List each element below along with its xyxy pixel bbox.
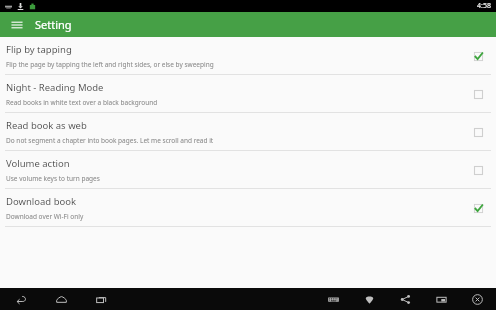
button[interactable]: Back — [12, 290, 30, 308]
staticText: Night - Reading Mode — [6, 81, 104, 94]
staticText: Use volume keys to turn pages — [6, 174, 100, 183]
button[interactable]: Keyboard — [324, 290, 342, 308]
button[interactable]: Flip by tapping — [0, 37, 496, 74]
button[interactable]: Checked — [468, 198, 488, 218]
button[interactable]: Night - Reading Mode — [0, 75, 496, 112]
button[interactable]: Unchecked — [468, 122, 488, 142]
button[interactable]: Unchecked — [468, 84, 488, 104]
button[interactable]: Recent apps — [92, 290, 110, 308]
button[interactable]: Unchecked — [468, 160, 488, 180]
button[interactable]: Location — [360, 290, 378, 308]
button[interactable]: Screenshot — [432, 290, 450, 308]
staticText: Do not segment a chapter into book pages… — [6, 136, 214, 145]
staticText: Download over Wi-Fi only — [6, 212, 84, 221]
button[interactable]: Volume action — [0, 151, 496, 188]
staticText: Download book — [6, 195, 77, 208]
button[interactable]: Open navigation drawer — [8, 16, 26, 34]
staticText: Flip by tapping — [6, 43, 72, 56]
staticText: Read book as web — [6, 119, 87, 132]
button[interactable]: Home — [52, 290, 70, 308]
staticText: Volume action — [6, 157, 70, 170]
button[interactable]: Download book — [0, 189, 496, 226]
button[interactable]: Share — [396, 290, 414, 308]
staticText: Read books in white text over a black ba… — [6, 98, 158, 107]
staticText: 4:58 — [477, 1, 491, 11]
staticText: Flip the page by tapping the left and ri… — [6, 60, 214, 69]
button[interactable]: Read book as web — [0, 113, 496, 150]
button[interactable]: Checked — [468, 46, 488, 66]
staticText: Setting — [35, 17, 72, 32]
button[interactable]: Close — [468, 290, 486, 308]
